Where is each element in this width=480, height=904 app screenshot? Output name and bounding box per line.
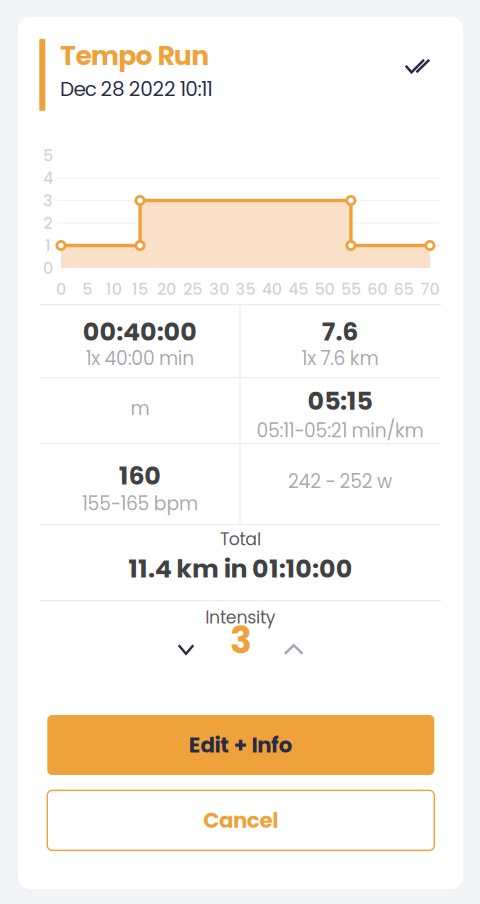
staticText: 00:40:00 [83, 314, 197, 349]
staticText: 1x 40:00 min [86, 345, 194, 371]
staticText: Total [220, 527, 261, 551]
staticText: 1 [45, 234, 51, 257]
staticText: 3 [230, 615, 252, 666]
staticText: 30 [209, 278, 229, 300]
staticText: 50 [315, 278, 335, 300]
staticText: 11.4 km in 01:10:00 [128, 551, 353, 586]
staticText: 55 [341, 278, 361, 300]
button[interactable]: Workout completed [394, 48, 440, 83]
staticText: 0 [56, 278, 66, 300]
staticText: 242 - 252 w [288, 468, 392, 494]
staticText: 60 [367, 278, 387, 300]
button[interactable]: Decrease intensity [164, 629, 208, 669]
staticText: Intensity [205, 605, 276, 630]
staticText: Tempo Run [60, 37, 209, 74]
staticText: 20 [157, 278, 176, 300]
staticText: 45 [288, 278, 308, 300]
staticText: Cancel [203, 805, 278, 835]
staticText: Edit + Info [189, 730, 293, 760]
staticText: 3 [43, 189, 53, 212]
staticText: 05:15 [307, 383, 373, 419]
staticText: 0 [43, 257, 53, 279]
staticText: 40 [262, 278, 282, 300]
staticText: 1x 7.6 km [302, 345, 378, 371]
staticText: 7.6 [322, 314, 358, 349]
staticText: Dec 28 2022 10:11 [60, 75, 212, 103]
staticText: 25 [183, 278, 202, 300]
staticText: 35 [235, 278, 255, 300]
staticText: 05:11-05:21 min/km [256, 418, 424, 444]
button[interactable]: Edit + Info [47, 715, 434, 775]
button[interactable]: Cancel [47, 790, 434, 850]
staticText: m [130, 395, 149, 421]
staticText: 15 [132, 278, 148, 300]
staticText: 2 [43, 212, 52, 234]
staticText: 5 [82, 278, 92, 300]
button[interactable]: Increase intensity [272, 629, 316, 669]
staticText: 70 [420, 278, 439, 300]
staticText: 10 [106, 278, 122, 300]
staticText: 160 [119, 458, 161, 493]
staticText: 4 [43, 167, 53, 189]
staticText: 155-165 bpm [82, 490, 198, 517]
staticText: 5 [43, 144, 53, 167]
staticText: 65 [394, 278, 414, 300]
